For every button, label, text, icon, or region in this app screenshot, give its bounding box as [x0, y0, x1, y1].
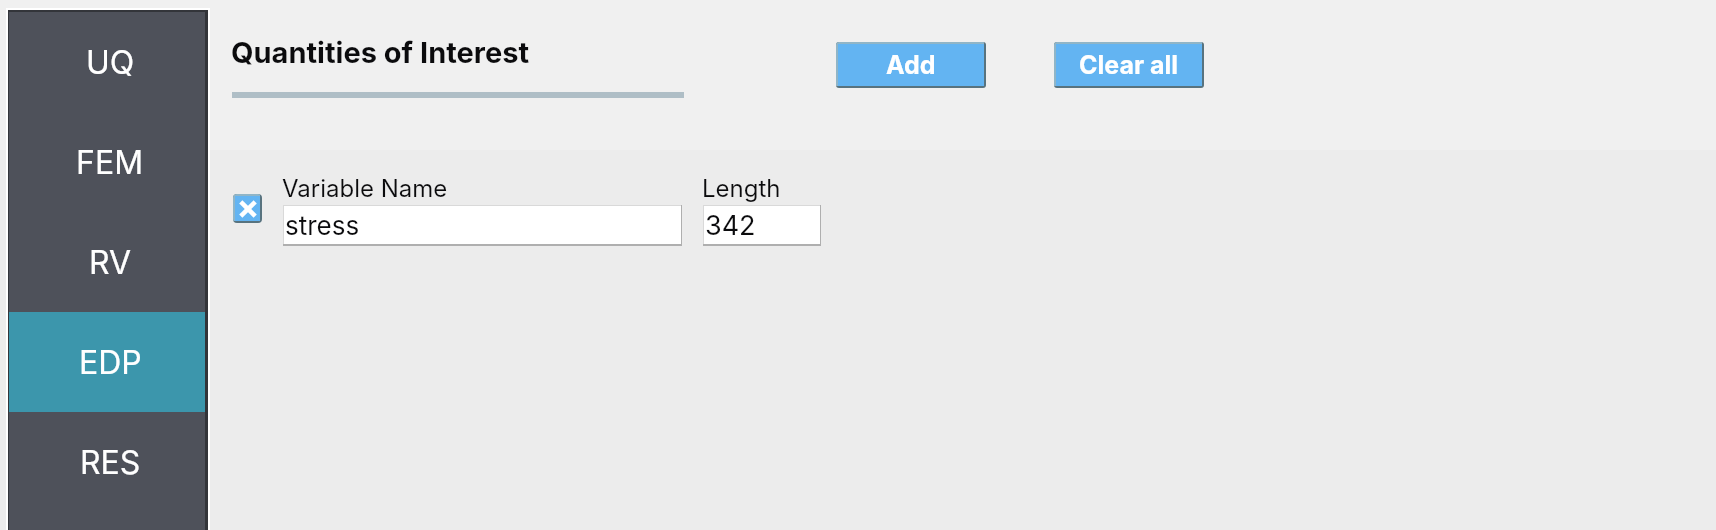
button[interactable]: RES [9, 412, 205, 512]
button[interactable]: Add [838, 44, 984, 86]
button[interactable]: stress [284, 206, 681, 244]
staticText: Length [702, 174, 781, 203]
staticText: Clear all [1079, 50, 1179, 80]
staticText: FEM [76, 143, 144, 182]
staticText: RES [80, 443, 141, 482]
staticText: Variable Name [282, 174, 448, 203]
button[interactable]: UQ [9, 12, 205, 112]
staticText: 342 [705, 209, 756, 242]
button[interactable]: Clear all [1056, 44, 1202, 86]
staticText: stress [285, 210, 360, 241]
staticText: Quantities of Interest [231, 35, 530, 70]
button[interactable]: Remove quantity [235, 196, 260, 221]
staticText: UQ [86, 43, 135, 82]
button[interactable]: RV [9, 212, 205, 312]
button[interactable]: EDP [9, 312, 205, 412]
staticText: RV [89, 243, 132, 282]
button[interactable]: FEM [9, 112, 205, 212]
staticText: EDP [79, 343, 142, 382]
staticText: Add [886, 50, 936, 80]
button[interactable]: 342 [704, 206, 820, 244]
